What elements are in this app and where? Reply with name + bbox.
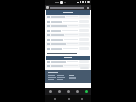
button[interactable]: Tabs <box>64 88 72 95</box>
button[interactable]: Back <box>50 95 59 102</box>
button[interactable]: Home <box>46 88 54 95</box>
button[interactable]: Back <box>55 88 63 95</box>
button[interactable]: Home <box>64 95 73 102</box>
button[interactable]: Recents <box>77 95 86 102</box>
button[interactable]: Menu <box>82 88 90 95</box>
button[interactable]: Address bar <box>45 5 91 10</box>
button[interactable]: Bookmarks <box>73 88 81 95</box>
